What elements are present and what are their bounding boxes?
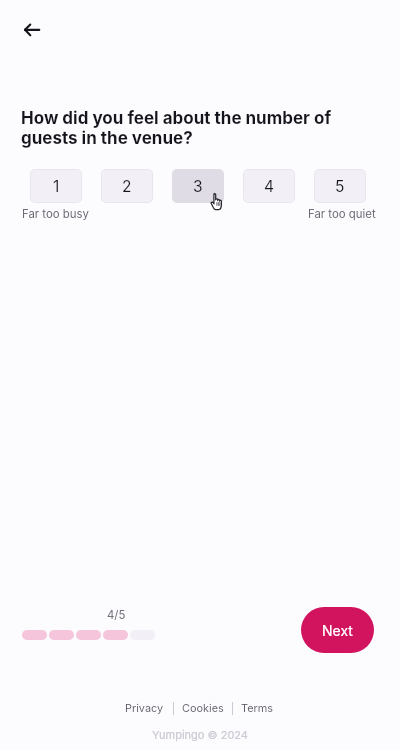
button[interactable]: 3 bbox=[172, 169, 224, 203]
staticText: 5 bbox=[335, 177, 345, 196]
staticText: 4 bbox=[264, 177, 275, 196]
button[interactable]: Next bbox=[301, 607, 374, 653]
button[interactable]: 5 bbox=[314, 169, 366, 203]
button[interactable]: Privacy bbox=[125, 701, 164, 714]
button[interactable]: Back bbox=[16, 14, 48, 46]
staticText: Far too quiet bbox=[308, 207, 376, 221]
staticText: 1 bbox=[53, 177, 60, 196]
staticText: How did you feel about the number of gue… bbox=[21, 108, 356, 148]
staticText: Yumpingo © 2024 bbox=[0, 728, 400, 741]
staticText: Next bbox=[322, 622, 353, 639]
button[interactable]: 4 bbox=[243, 169, 295, 203]
button[interactable]: Cookies bbox=[182, 701, 224, 714]
staticText: 4/5 bbox=[107, 608, 126, 622]
staticText: 2 bbox=[122, 177, 132, 196]
staticText: 3 bbox=[193, 177, 203, 196]
staticText: Far too busy bbox=[22, 207, 89, 221]
button[interactable]: 2 bbox=[101, 169, 153, 203]
button[interactable]: 1 bbox=[30, 169, 82, 203]
button[interactable]: Terms bbox=[241, 701, 274, 714]
